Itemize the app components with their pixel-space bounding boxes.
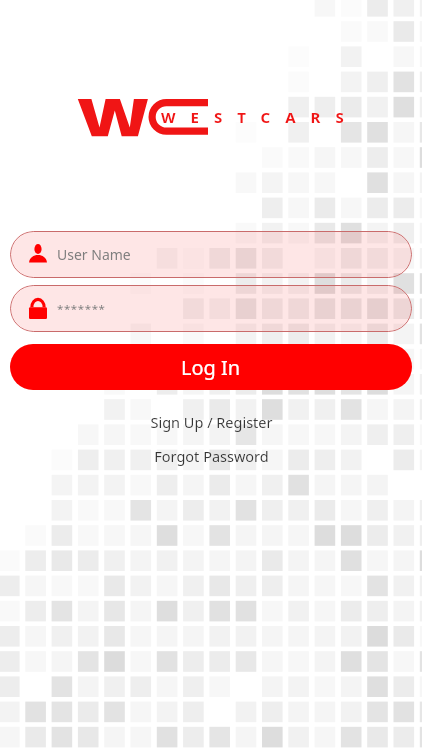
staticText: Forgot Password (154, 446, 269, 466)
button[interactable]: User Name (10, 231, 412, 278)
staticText: Log In (181, 354, 241, 381)
button[interactable]: Forgot Password (140, 443, 283, 469)
staticText: Sign Up / Register (150, 412, 273, 432)
staticText: WESTCARS (161, 107, 359, 127)
button[interactable]: ******* (10, 285, 412, 332)
staticText: ******* (57, 301, 106, 317)
other: WestCars logo (76, 96, 348, 140)
staticText: User Name (57, 245, 131, 264)
button[interactable]: Log In (10, 344, 412, 390)
button[interactable]: Sign Up / Register (136, 409, 287, 435)
